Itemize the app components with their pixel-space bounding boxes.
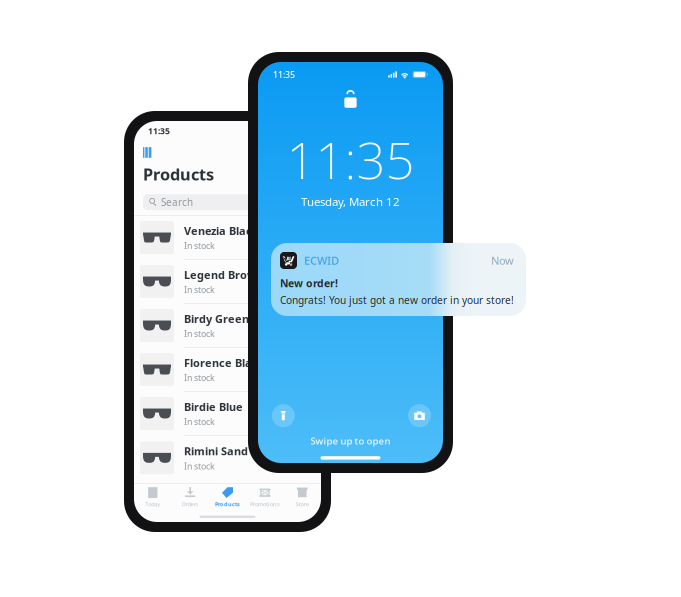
button[interactable]: Florence Black (134, 348, 321, 392)
staticText: Today (145, 500, 160, 508)
staticText: Products (215, 500, 240, 508)
staticText: Rimini Sand (184, 444, 248, 459)
button[interactable]: Birdy Green (134, 304, 321, 348)
staticText: In stock (184, 284, 215, 296)
button[interactable]: Today (134, 484, 171, 510)
staticText: In stock (184, 416, 215, 428)
staticText: Swipe up to open (310, 434, 390, 447)
staticText: Birdy Green (184, 311, 249, 326)
staticText: ECWID (304, 253, 339, 268)
staticText: Florence Black (184, 355, 265, 370)
staticText: 11:35 (148, 125, 170, 137)
staticText: Now (491, 253, 514, 268)
button[interactable]: Flashlight (272, 404, 295, 427)
button[interactable]: Legend Brown (134, 260, 321, 304)
staticText: Legend Brown (184, 267, 263, 282)
staticText: In stock (184, 240, 215, 252)
staticText: Tuesday, March 12 (301, 194, 400, 209)
staticText: Orders (182, 500, 199, 508)
button[interactable]: Search (143, 194, 312, 210)
button[interactable]: Venezia Black (134, 216, 321, 260)
button[interactable]: Orders (171, 484, 209, 510)
staticText: Store (296, 500, 309, 508)
staticText: Promotions (250, 500, 280, 508)
button[interactable]: Products (209, 484, 246, 510)
button[interactable]: ECWID (271, 243, 526, 316)
staticText: Search (161, 195, 193, 209)
staticText: In stock (184, 460, 215, 472)
button[interactable]: Layout options (143, 144, 165, 161)
button[interactable]: Birdie Blue (134, 392, 321, 436)
staticText: 11:35 (273, 68, 295, 80)
staticText: In stock (184, 328, 215, 340)
button[interactable]: Camera (408, 404, 431, 427)
staticText: Venezia Black (184, 223, 259, 238)
staticText: Products (143, 163, 214, 185)
staticText: New order! (280, 276, 338, 290)
staticText: 11:35 (286, 125, 414, 194)
button[interactable]: Rimini Sand (134, 436, 321, 480)
staticText: Congrats! You just got a new order in yo… (280, 293, 514, 307)
staticText: In stock (184, 372, 215, 384)
staticText: Birdie Blue (184, 399, 243, 414)
button[interactable]: Promotions (246, 484, 284, 510)
button[interactable]: Store (284, 484, 321, 510)
